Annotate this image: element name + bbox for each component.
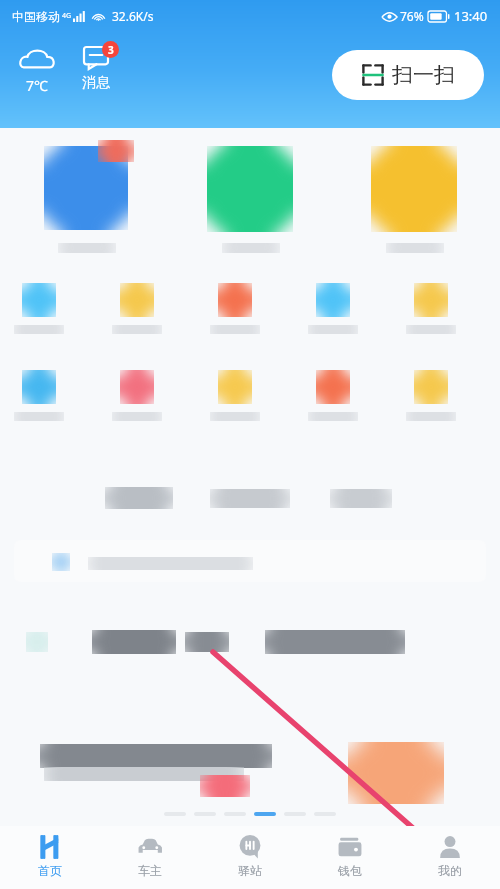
staticText: 钱包 [338, 863, 362, 878]
staticText: 13:40 [454, 7, 488, 25]
button[interactable]: 7℃ [16, 46, 58, 97]
staticText: 7℃ [26, 76, 48, 95]
staticText: 3 [108, 43, 114, 57]
button[interactable]: 我的 [400, 826, 500, 889]
staticText: 中国移动 [12, 9, 60, 24]
button[interactable]: 钱包 [300, 826, 400, 889]
staticText: 扫一扫 [392, 62, 455, 88]
staticText: 76% [400, 8, 424, 24]
staticText: 4G [62, 11, 72, 21]
button[interactable]: 扫一扫 [332, 50, 484, 100]
button[interactable]: 首页 [0, 826, 100, 889]
button[interactable]: 驿站 [200, 826, 300, 889]
button[interactable]: 消息 [76, 44, 116, 94]
staticText: 消息 [82, 74, 110, 92]
button[interactable]: 车主 [100, 826, 200, 889]
staticText: 我的 [438, 863, 462, 878]
staticText: 首页 [38, 863, 62, 878]
staticText: 32.6K/s [112, 8, 154, 24]
staticText: 驿站 [238, 863, 262, 878]
staticText: 车主 [138, 863, 162, 878]
